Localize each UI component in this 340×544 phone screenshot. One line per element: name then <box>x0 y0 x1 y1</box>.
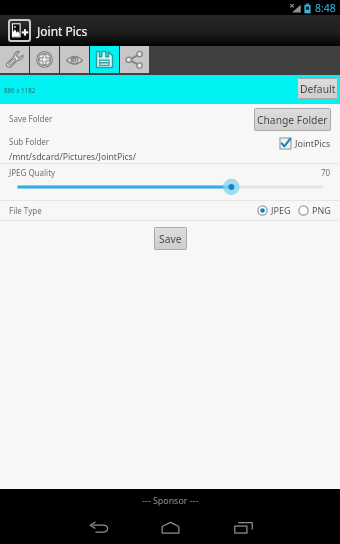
staticText: JPEG Quality <box>9 167 56 178</box>
staticText: JPEG <box>271 204 291 216</box>
button[interactable]: Recent apps <box>217 511 269 544</box>
staticText: PNG <box>312 204 331 216</box>
button[interactable]: JointPics <box>280 137 331 149</box>
staticText: Joint Pics <box>37 23 88 39</box>
button[interactable]: Settings <box>0 46 29 73</box>
button[interactable]: Save <box>154 227 187 250</box>
button[interactable]: Change Folder <box>254 108 331 131</box>
button[interactable]: Align <box>30 46 59 73</box>
button[interactable]: Home <box>144 511 196 544</box>
staticText: --- Sponsor --- <box>142 494 199 506</box>
button[interactable]: JPEG <box>257 204 291 216</box>
staticText: File Type <box>9 205 42 216</box>
button[interactable]: Save <box>90 46 119 73</box>
staticText: Save <box>159 232 182 246</box>
button[interactable]: PNG <box>298 204 331 216</box>
staticText: 886 x 1182 <box>4 86 36 94</box>
staticText: Save Folder <box>9 113 53 124</box>
staticText: JointPics <box>295 137 331 149</box>
button[interactable]: Default <box>297 78 338 99</box>
staticText: 8:48 <box>315 1 336 15</box>
button[interactable]: Share <box>120 46 149 73</box>
staticText: Sub Folder <box>9 136 50 147</box>
button[interactable]: Preview <box>60 46 89 73</box>
staticText: Change Folder <box>257 113 328 127</box>
staticText: /mnt/sdcard/Pictures/JointPics/ <box>9 151 136 163</box>
staticText: 70 <box>321 167 331 178</box>
button[interactable]: Back <box>72 511 124 544</box>
staticText: Default <box>300 82 336 96</box>
